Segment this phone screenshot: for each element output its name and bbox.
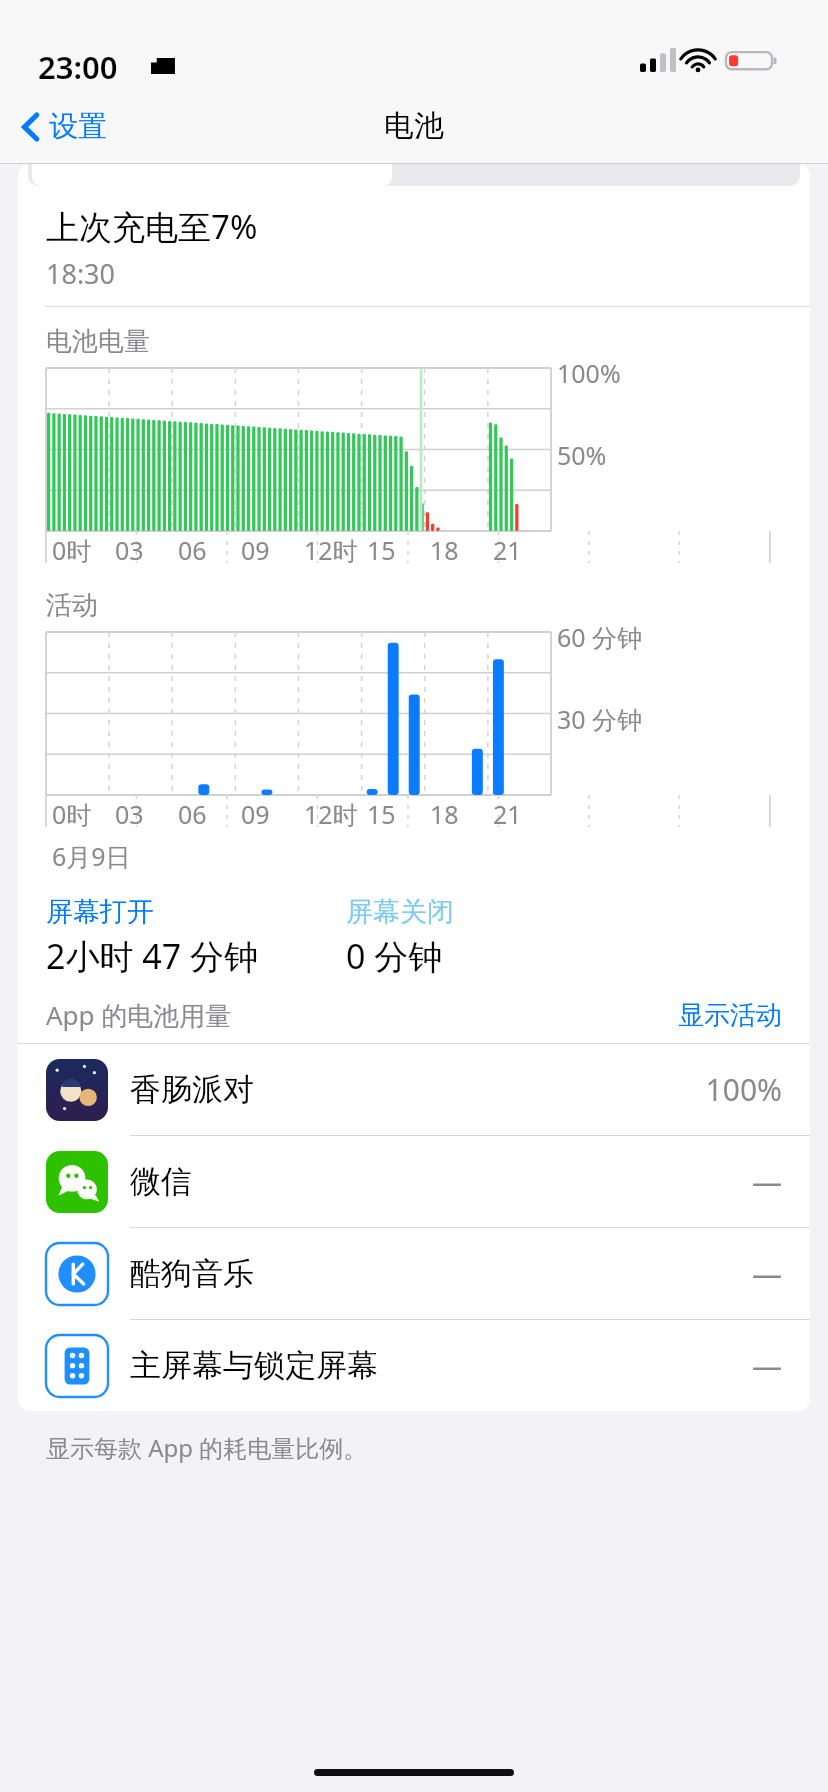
staticText: 18 xyxy=(430,533,459,567)
staticText: 显示每款 App 的耗电量比例。 xyxy=(46,1431,368,1464)
staticText: 电池 xyxy=(384,107,444,145)
staticText: App 的电池用量 xyxy=(46,997,232,1033)
staticText: 酷狗音乐 xyxy=(130,1254,254,1293)
staticText: 50% xyxy=(557,438,607,472)
staticText: 15 xyxy=(367,797,396,831)
staticText: 30 分钟 xyxy=(557,702,643,736)
staticText: 上次充电至7% xyxy=(46,204,258,249)
staticText: 香肠派对 xyxy=(130,1070,254,1109)
button[interactable]: 香肠派对 xyxy=(18,1044,810,1136)
staticText: 2小时 47 分钟 xyxy=(46,933,259,979)
staticText: 活动 xyxy=(46,589,98,622)
staticText: 23:00 xyxy=(38,46,118,88)
staticText: 12时 xyxy=(304,533,358,567)
staticText: 18:30 xyxy=(46,255,116,292)
staticText: 06 xyxy=(178,533,207,567)
button[interactable]: 显示活动 xyxy=(678,999,782,1032)
button[interactable]: 设置 xyxy=(0,102,123,151)
staticText: 60 分钟 xyxy=(557,620,643,654)
staticText: 屏幕打开 xyxy=(46,895,154,929)
staticText: 0 分钟 xyxy=(346,933,443,979)
staticText: 设置 xyxy=(49,108,107,145)
staticText: 微信 xyxy=(130,1162,192,1201)
staticText: 电池电量 xyxy=(46,325,150,358)
button[interactable]: 酷狗音乐 xyxy=(18,1228,810,1320)
staticText: 03 xyxy=(115,797,144,831)
staticText: — xyxy=(752,1345,782,1386)
button[interactable]: 微信 xyxy=(18,1136,810,1228)
staticText: 100% xyxy=(557,356,621,390)
staticText: 12时 xyxy=(304,797,358,831)
staticText: 6月9日 xyxy=(52,839,131,873)
staticText: 21 xyxy=(493,797,522,831)
staticText: 0时 xyxy=(52,797,92,831)
staticText: 主屏幕与锁定屏幕 xyxy=(130,1346,378,1385)
staticText: 06 xyxy=(178,797,207,831)
staticText: 显示活动 xyxy=(678,999,782,1032)
button[interactable]: 主屏幕与锁定屏幕 xyxy=(18,1320,810,1411)
staticText: — xyxy=(752,1161,782,1202)
staticText: — xyxy=(752,1253,782,1294)
staticText: 0时 xyxy=(52,533,92,567)
staticText: 18 xyxy=(430,797,459,831)
staticText: 15 xyxy=(367,533,396,567)
staticText: 03 xyxy=(115,533,144,567)
staticText: 100% xyxy=(705,1069,782,1110)
staticText: 屏幕关闭 xyxy=(346,895,454,929)
staticText: 21 xyxy=(493,533,522,567)
staticText: 09 xyxy=(241,797,270,831)
staticText: 09 xyxy=(241,533,270,567)
